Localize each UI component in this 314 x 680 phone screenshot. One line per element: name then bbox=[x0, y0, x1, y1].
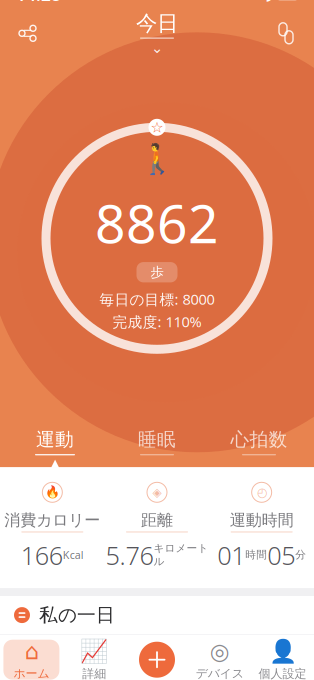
staticText: 歩 bbox=[150, 264, 163, 280]
button[interactable]: ⌂ bbox=[0, 640, 63, 680]
staticText: ☆ bbox=[150, 119, 163, 136]
button[interactable]: 心拍数 bbox=[208, 421, 310, 467]
staticText: ◈ bbox=[152, 485, 161, 499]
staticText: 時間 bbox=[245, 548, 267, 561]
staticText: 運動時間 bbox=[230, 510, 294, 530]
staticText: 05 bbox=[267, 538, 295, 572]
staticText: ⌄ bbox=[151, 40, 163, 56]
staticText: 166 bbox=[21, 538, 63, 572]
staticText: 🚶 bbox=[138, 142, 175, 176]
staticText: 👤 bbox=[269, 638, 297, 664]
staticText: Kcal bbox=[63, 548, 84, 562]
staticText: 私の一日 bbox=[39, 604, 115, 626]
staticText: 心拍数 bbox=[230, 428, 287, 451]
button[interactable]: 📈 bbox=[63, 640, 126, 680]
staticText: 個人設定 bbox=[259, 666, 307, 680]
staticText: 睡眠 bbox=[138, 428, 176, 451]
staticText: ◗ bbox=[265, 0, 273, 3]
staticText: ◴ bbox=[257, 485, 267, 499]
staticText: 今日 bbox=[136, 10, 178, 37]
staticText: 📈 bbox=[80, 638, 108, 664]
staticText: デバイス bbox=[196, 666, 244, 680]
staticText: 距離 bbox=[141, 510, 173, 530]
staticText: ▲ bbox=[51, 457, 59, 469]
staticText bbox=[155, 456, 158, 470]
staticText: ◎ bbox=[210, 638, 230, 664]
staticText bbox=[257, 456, 260, 470]
staticText: 01 bbox=[217, 538, 245, 572]
button[interactable]: 追加 bbox=[126, 635, 188, 680]
button[interactable]: ◴ bbox=[209, 481, 314, 572]
staticText: ホーム bbox=[13, 666, 49, 680]
button[interactable]: 今日 bbox=[112, 11, 202, 55]
button[interactable]: 共有 bbox=[6, 11, 50, 55]
staticText: 運動 bbox=[36, 428, 74, 451]
staticText: 分 bbox=[295, 548, 306, 561]
staticText: 完成度: 110% bbox=[112, 312, 201, 331]
button[interactable]: 運動 bbox=[4, 421, 106, 467]
button[interactable]: 連携 bbox=[264, 11, 308, 55]
staticText: 8862 bbox=[95, 187, 219, 258]
staticText: ⌂ bbox=[24, 638, 38, 664]
button[interactable]: 🔥 bbox=[0, 481, 105, 572]
staticText: 詳細 bbox=[82, 666, 106, 680]
button[interactable]: ◎ bbox=[188, 640, 251, 680]
staticText: 消費カロリー bbox=[4, 510, 100, 530]
staticText: 毎日の目標: 8000 bbox=[99, 289, 214, 309]
button[interactable]: ◈ bbox=[105, 481, 209, 572]
button[interactable]: 睡眠 bbox=[106, 421, 208, 467]
button[interactable]: 私の一日 bbox=[0, 596, 314, 634]
button[interactable]: 👤 bbox=[251, 640, 314, 680]
staticText: キロメートル bbox=[153, 542, 208, 568]
staticText: 14:28 bbox=[16, 0, 61, 6]
staticText: 🔥 bbox=[45, 485, 60, 499]
staticText: 5.76 bbox=[105, 538, 153, 572]
